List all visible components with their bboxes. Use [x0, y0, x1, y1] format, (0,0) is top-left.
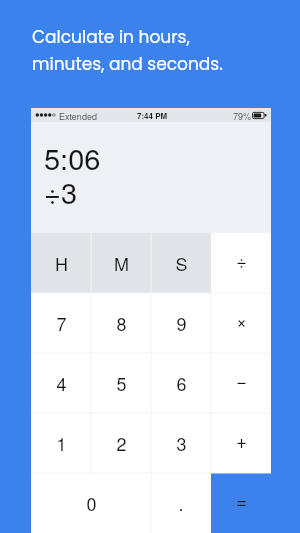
staticText: .: [178, 490, 184, 516]
staticText: 8: [116, 310, 127, 336]
staticText: ×: [236, 307, 247, 333]
button[interactable]: 1: [31, 413, 91, 473]
button[interactable]: M: [91, 233, 151, 293]
staticText: ÷3: [44, 171, 78, 213]
staticText: Extended: [59, 110, 97, 123]
button[interactable]: 2: [91, 413, 151, 473]
staticText: +: [236, 427, 247, 453]
button[interactable]: 6: [151, 353, 211, 413]
button[interactable]: ×: [211, 293, 271, 353]
button[interactable]: 3: [151, 413, 211, 473]
button[interactable]: =: [211, 473, 271, 533]
staticText: ÷: [236, 247, 247, 273]
other: Battery 79 percent: [252, 112, 267, 119]
button[interactable]: .: [151, 473, 211, 533]
button[interactable]: −: [211, 353, 271, 413]
staticText: 3: [176, 430, 187, 456]
staticText: 79%: [233, 110, 252, 123]
button[interactable]: 4: [31, 353, 91, 413]
button[interactable]: 0: [31, 473, 151, 533]
button[interactable]: 7: [31, 293, 91, 353]
staticText: 5:06: [44, 137, 101, 179]
staticText: 6: [176, 370, 187, 396]
staticText: 7: [56, 310, 67, 336]
button[interactable]: +: [211, 413, 271, 473]
staticText: 5: [116, 370, 127, 396]
staticText: 7:44 PM: [137, 110, 168, 121]
staticText: S: [175, 250, 188, 276]
staticText: 2: [116, 430, 127, 456]
staticText: 1: [56, 430, 67, 456]
button[interactable]: S: [151, 233, 211, 293]
staticText: 4: [56, 370, 67, 396]
button[interactable]: 9: [151, 293, 211, 353]
button[interactable]: ÷: [211, 233, 271, 293]
staticText: M: [114, 250, 129, 276]
button[interactable]: 8: [91, 293, 151, 353]
staticText: H: [55, 250, 68, 276]
button[interactable]: H: [31, 233, 91, 293]
staticText: 9: [176, 310, 187, 336]
staticText: Calculate in hours, minutes, and seconds…: [32, 25, 223, 76]
staticText: −: [236, 367, 247, 393]
button[interactable]: 5: [91, 353, 151, 413]
staticText: 0: [86, 490, 97, 516]
staticText: =: [236, 487, 247, 513]
